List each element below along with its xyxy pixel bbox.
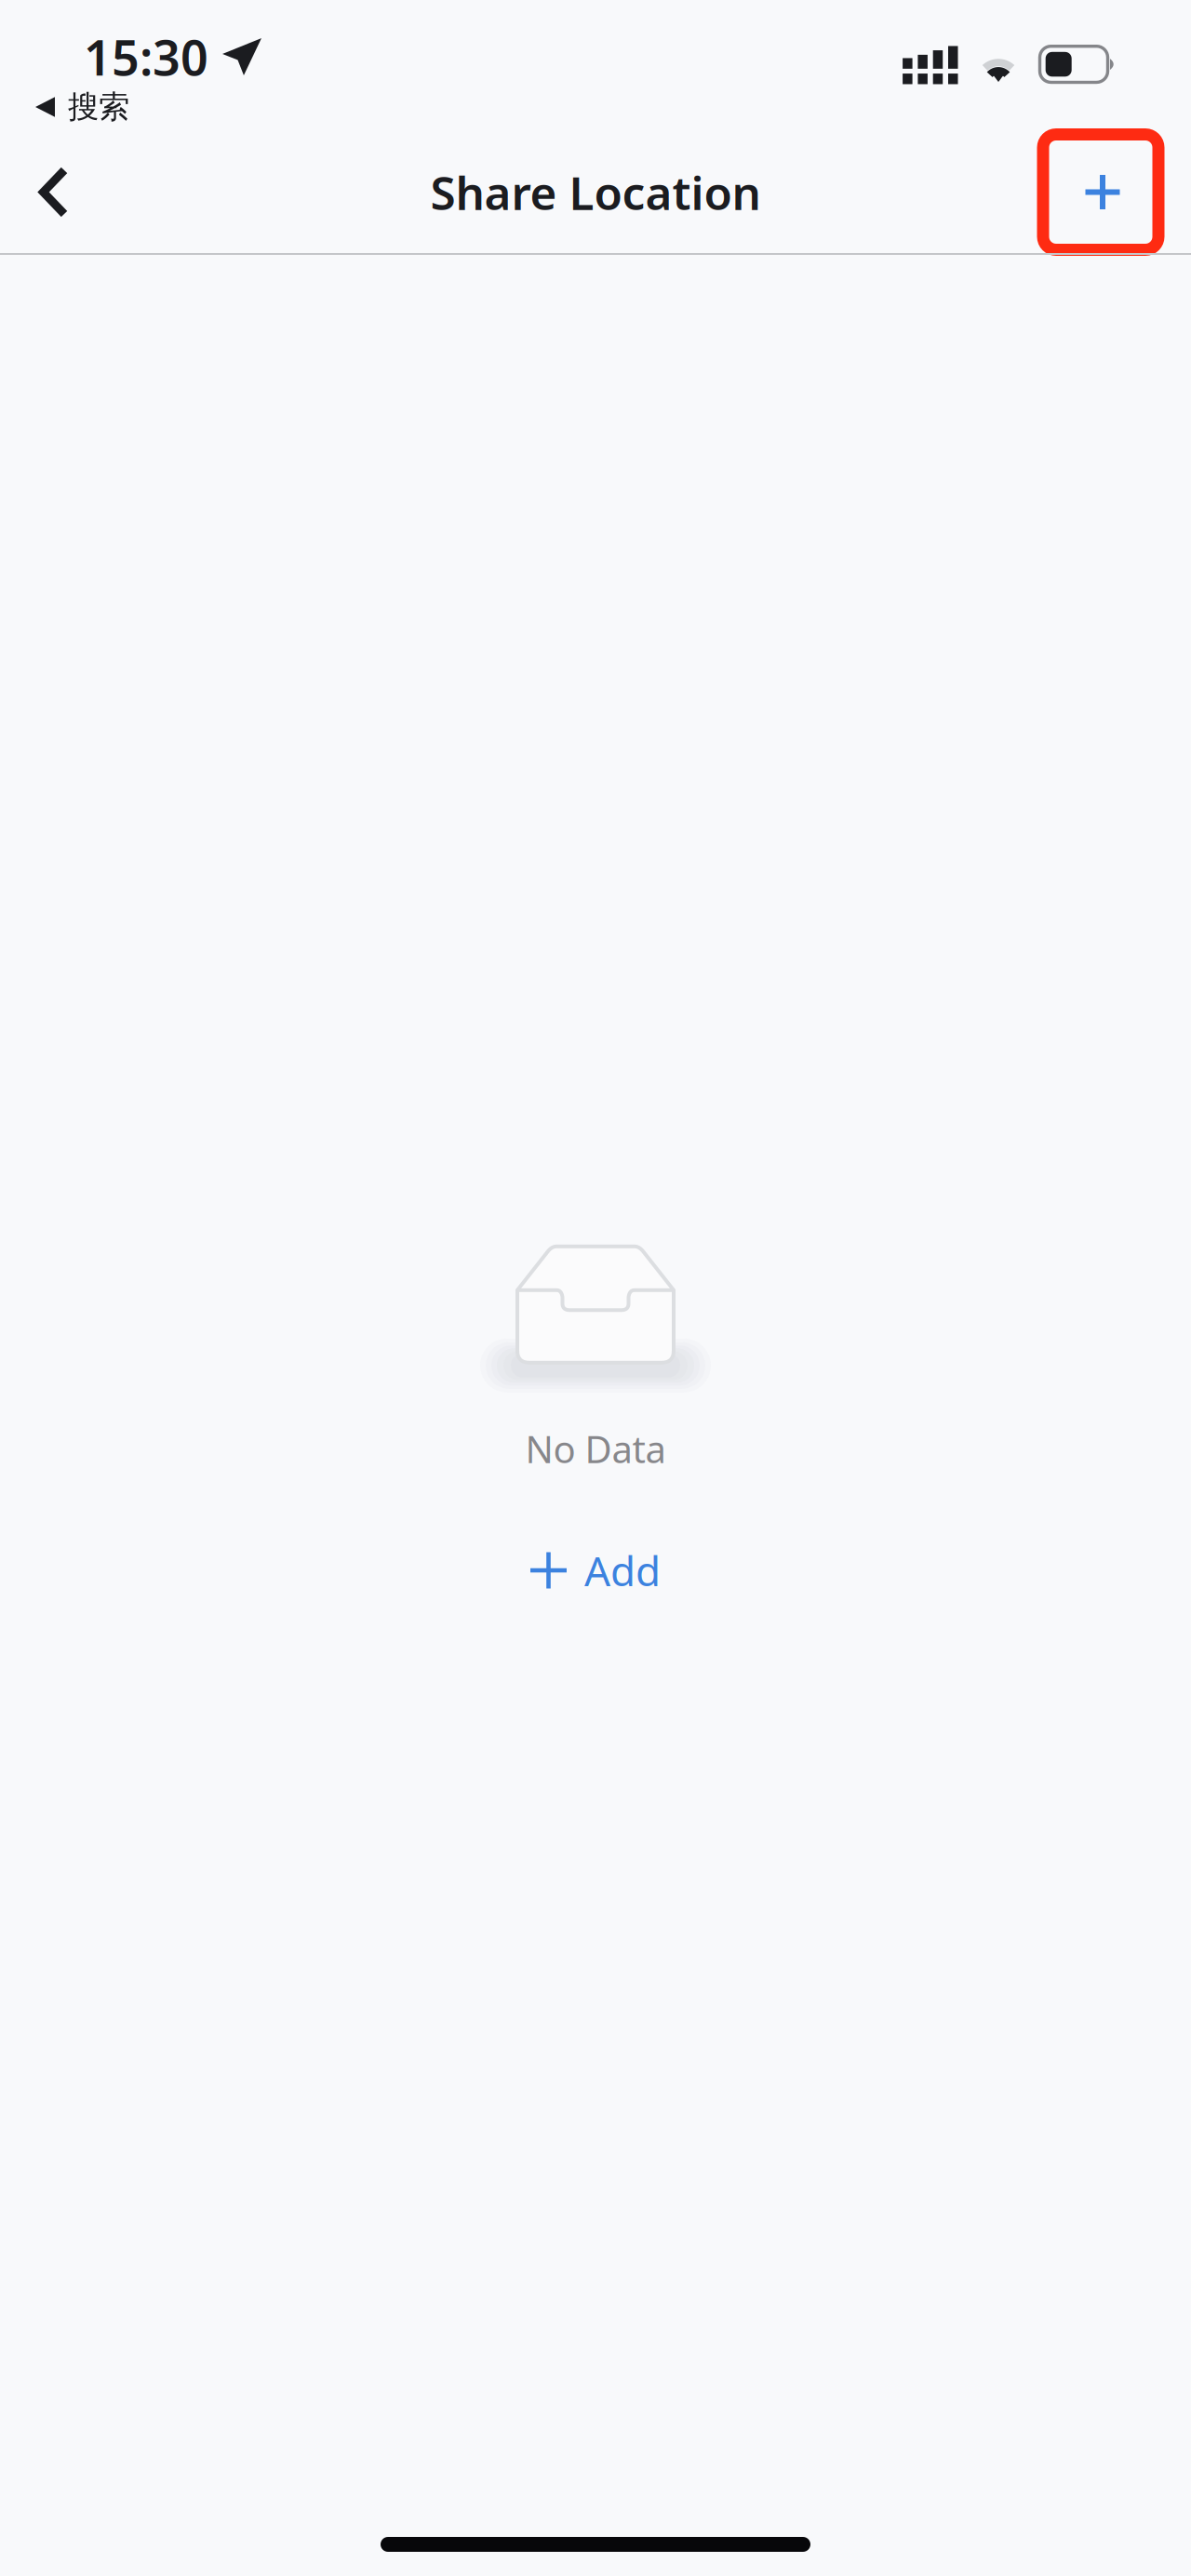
button[interactable]: Back <box>0 129 114 255</box>
staticText: Add <box>584 1543 661 1598</box>
staticText: 搜索 <box>68 88 129 126</box>
button[interactable]: 搜索 <box>0 84 144 130</box>
staticText: Share Location <box>430 162 761 223</box>
staticText: No Data <box>525 1424 666 1474</box>
staticText: 15:30 <box>84 25 208 89</box>
button[interactable]: Add <box>1034 128 1191 256</box>
button[interactable]: Add <box>493 1530 698 1611</box>
